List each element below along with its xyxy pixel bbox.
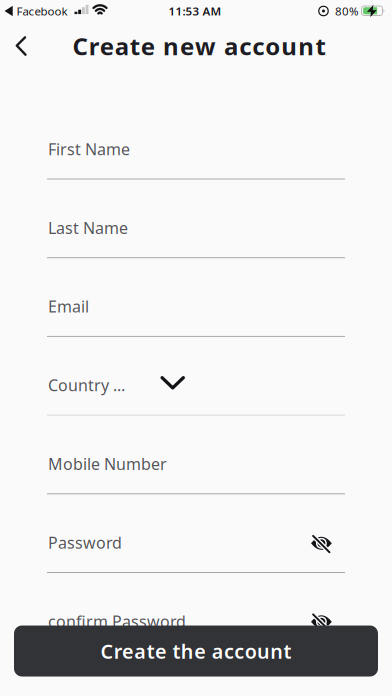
staticText: Create new account xyxy=(73,30,325,62)
staticText: Email xyxy=(48,295,89,317)
staticText: Create the account xyxy=(100,638,292,664)
button[interactable]: Password xyxy=(0,520,392,574)
staticText: First Name xyxy=(48,138,130,160)
staticText: Password xyxy=(48,532,122,553)
button[interactable]: Show password xyxy=(309,533,333,553)
button[interactable]: Show confirm password xyxy=(309,612,333,632)
button[interactable]: First Name xyxy=(0,127,392,181)
button[interactable]: Create the account xyxy=(14,625,378,676)
staticText: Mobile Number xyxy=(48,453,167,475)
button[interactable]: Email xyxy=(0,284,392,338)
staticText: Country ... xyxy=(48,374,125,396)
button[interactable]: Mobile Number xyxy=(0,442,392,496)
staticText: Last Name xyxy=(48,217,128,239)
staticText: 11:53 AM xyxy=(168,3,221,19)
button[interactable]: Back xyxy=(0,29,44,63)
staticText: Facebook xyxy=(16,3,67,19)
button[interactable]: confirm Password xyxy=(0,599,392,653)
staticText: 80% xyxy=(335,3,359,19)
button[interactable]: Last Name xyxy=(0,206,392,260)
button[interactable]: Back to Facebook xyxy=(2,0,67,22)
staticText: confirm Password xyxy=(48,610,186,632)
button[interactable]: Choose country xyxy=(160,375,185,390)
button[interactable]: Country ... xyxy=(0,363,392,417)
